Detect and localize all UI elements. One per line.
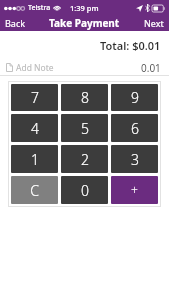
button[interactable]: Next (139, 15, 169, 31)
staticText: 0.01 (141, 61, 161, 75)
button[interactable]: 4 (11, 114, 58, 142)
staticText: 1 (31, 150, 39, 169)
staticText: Back (5, 17, 26, 29)
button[interactable]: 2 (61, 145, 108, 173)
staticText: 0 (81, 181, 89, 200)
staticText: Next (144, 17, 164, 29)
staticText: 4 (31, 119, 39, 138)
button[interactable]: 3 (111, 145, 158, 173)
staticText: Add Note (16, 62, 54, 74)
button[interactable]: 7 (11, 84, 58, 111)
staticText: + (131, 182, 138, 198)
button[interactable]: 1 (11, 145, 58, 173)
button[interactable]: 5 (61, 114, 108, 142)
staticText: Telstra (28, 3, 51, 13)
button[interactable]: 0 (61, 176, 108, 204)
button[interactable]: Clear (11, 176, 58, 204)
staticText: 2 (81, 150, 89, 169)
staticText: 9 (131, 88, 139, 107)
staticText: Total: $0.01 (100, 38, 161, 53)
button[interactable]: Add Note (0, 59, 169, 76)
staticText: 8 (81, 88, 89, 107)
button[interactable]: 8 (61, 84, 108, 111)
staticText: 7 (31, 88, 39, 107)
button[interactable]: Back (0, 15, 31, 31)
button[interactable]: 9 (111, 84, 158, 111)
staticText: 6 (131, 119, 139, 138)
staticText: 1:39 pm (70, 3, 99, 13)
staticText: C (30, 181, 39, 200)
staticText: 5 (81, 119, 89, 138)
staticText: Take Payment (49, 16, 120, 30)
button[interactable]: Add (111, 176, 158, 204)
staticText: 3 (131, 150, 139, 169)
button[interactable]: 6 (111, 114, 158, 142)
